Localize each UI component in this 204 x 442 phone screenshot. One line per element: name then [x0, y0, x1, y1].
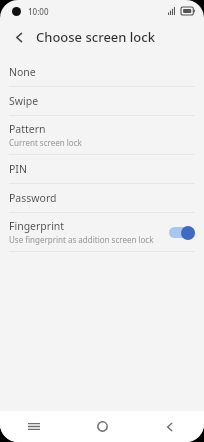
staticText: Password — [9, 191, 57, 205]
button[interactable]: Password — [0, 184, 204, 212]
button[interactable]: Fingerprint — [0, 213, 204, 251]
staticText: 10:00 — [28, 6, 49, 17]
button[interactable]: Back — [6, 24, 32, 50]
button[interactable]: None — [0, 58, 204, 86]
staticText: Pattern — [9, 122, 46, 136]
staticText: Use fingerprint as addition screen lock — [9, 234, 154, 245]
staticText: None — [9, 65, 36, 79]
staticText: Fingerprint — [9, 219, 65, 233]
button[interactable]: Home — [68, 411, 136, 442]
staticText: Swipe — [9, 94, 39, 108]
button[interactable]: Fingerprint toggle — [169, 225, 195, 240]
staticText: Current screen lock — [9, 137, 82, 148]
button[interactable]: Pattern — [0, 116, 204, 154]
button[interactable]: Swipe — [0, 87, 204, 115]
button[interactable]: PIN — [0, 155, 204, 183]
button[interactable]: Recents — [0, 411, 68, 442]
button[interactable]: Back — [136, 411, 204, 442]
staticText: PIN — [9, 162, 27, 176]
staticText: Choose screen lock — [36, 28, 155, 46]
